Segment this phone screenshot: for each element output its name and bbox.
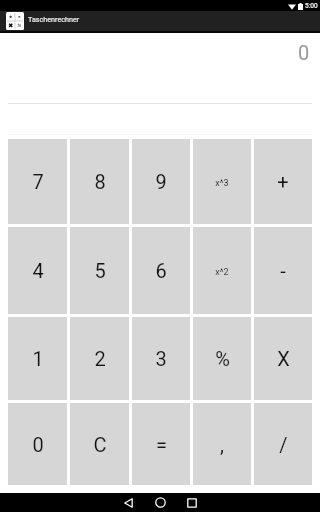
- button[interactable]: 9: [132, 139, 190, 224]
- button[interactable]: Home: [144, 493, 176, 512]
- staticText: 0: [298, 41, 310, 64]
- staticText: C: [93, 433, 107, 456]
- staticText: /: [279, 433, 288, 456]
- button[interactable]: 7: [8, 139, 67, 224]
- staticText: 8: [94, 170, 106, 193]
- staticText: -: [280, 259, 286, 282]
- staticText: 3: [155, 347, 167, 370]
- staticText: X: [277, 347, 290, 370]
- staticText: 4: [32, 259, 44, 282]
- button[interactable]: 0: [8, 403, 67, 485]
- button[interactable]: 6: [132, 227, 190, 314]
- staticText: %: [215, 347, 230, 370]
- staticText: 0: [32, 433, 44, 456]
- button[interactable]: 8: [70, 139, 129, 224]
- staticText: 7: [32, 170, 44, 193]
- button[interactable]: 4: [8, 227, 67, 314]
- staticText: ,: [220, 433, 224, 456]
- button[interactable]: %: [193, 317, 251, 400]
- staticText: x^2: [215, 267, 229, 278]
- button[interactable]: 5: [70, 227, 129, 314]
- button[interactable]: C: [70, 403, 129, 485]
- staticText: =: [156, 433, 167, 456]
- staticText: 6: [155, 259, 167, 282]
- button[interactable]: 3: [132, 317, 190, 400]
- button[interactable]: 1: [8, 317, 67, 400]
- button[interactable]: ,: [193, 403, 251, 485]
- button[interactable]: x^2: [193, 227, 251, 314]
- button[interactable]: Recents: [176, 493, 208, 512]
- staticText: Taschenrechner: [28, 15, 80, 23]
- button[interactable]: X: [254, 317, 312, 400]
- staticText: x^3: [215, 178, 229, 189]
- button[interactable]: /: [254, 403, 312, 485]
- staticText: 5: [94, 259, 106, 282]
- button[interactable]: -: [254, 227, 312, 314]
- staticText: 1: [32, 347, 44, 370]
- staticText: 2: [94, 347, 106, 370]
- button[interactable]: Back: [112, 493, 144, 512]
- button[interactable]: =: [132, 403, 190, 485]
- staticText: 5:00: [305, 2, 318, 10]
- staticText: +: [277, 170, 289, 193]
- button[interactable]: +: [254, 139, 312, 224]
- button[interactable]: x^3: [193, 139, 251, 224]
- button[interactable]: 2: [70, 317, 129, 400]
- staticText: 9: [155, 170, 167, 193]
